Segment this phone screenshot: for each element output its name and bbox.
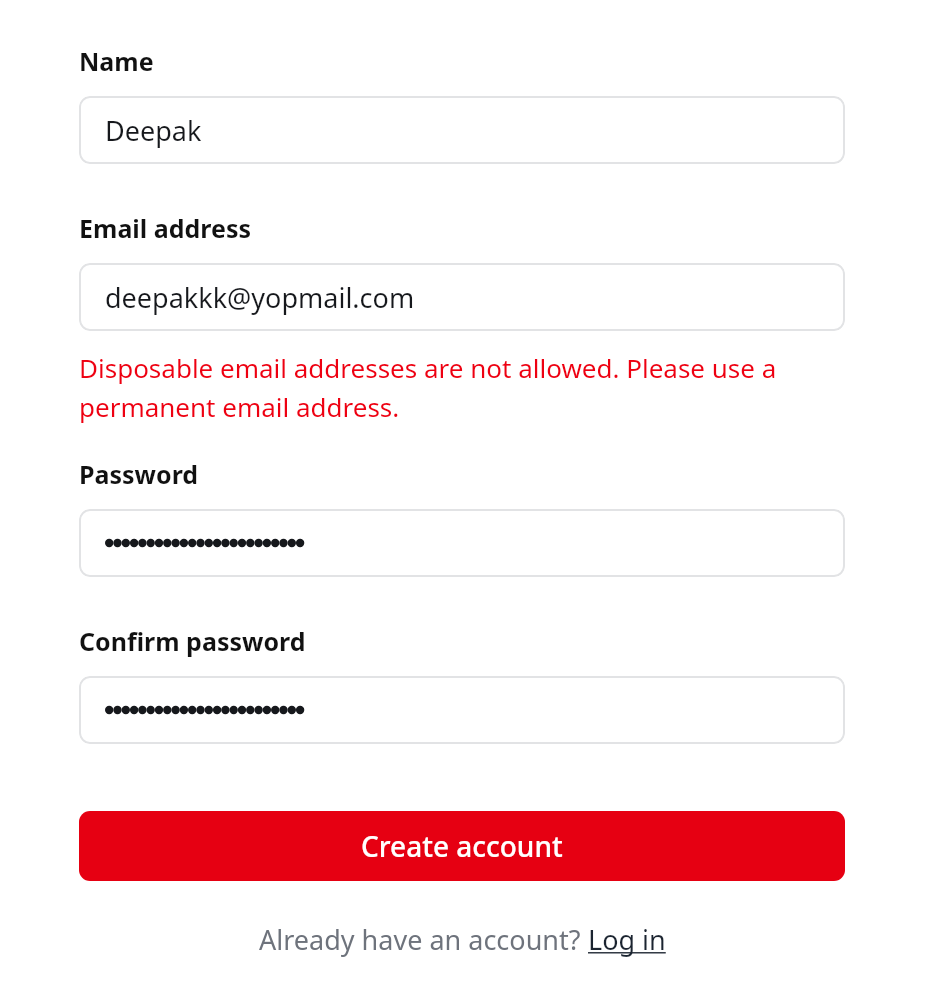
button[interactable]: Create account — [79, 811, 845, 881]
staticText: Confirm password — [79, 624, 306, 658]
staticText: Deepak — [105, 112, 202, 149]
button[interactable] — [79, 509, 845, 577]
button[interactable] — [79, 676, 845, 744]
staticText: Disposable email addresses are not allow… — [79, 350, 845, 425]
button[interactable]: deepakkk@yopmail.com — [79, 263, 845, 331]
staticText: Log in — [588, 921, 666, 958]
button[interactable]: Deepak — [79, 96, 845, 164]
staticText: Create account — [361, 827, 563, 865]
staticText: Email address — [79, 211, 252, 245]
staticText: Already have an account? — [259, 921, 588, 958]
staticText: deepakkk@yopmail.com — [105, 279, 415, 316]
staticText: Name — [79, 44, 154, 78]
staticText: Password — [79, 457, 199, 491]
button[interactable]: Log in — [588, 921, 666, 958]
